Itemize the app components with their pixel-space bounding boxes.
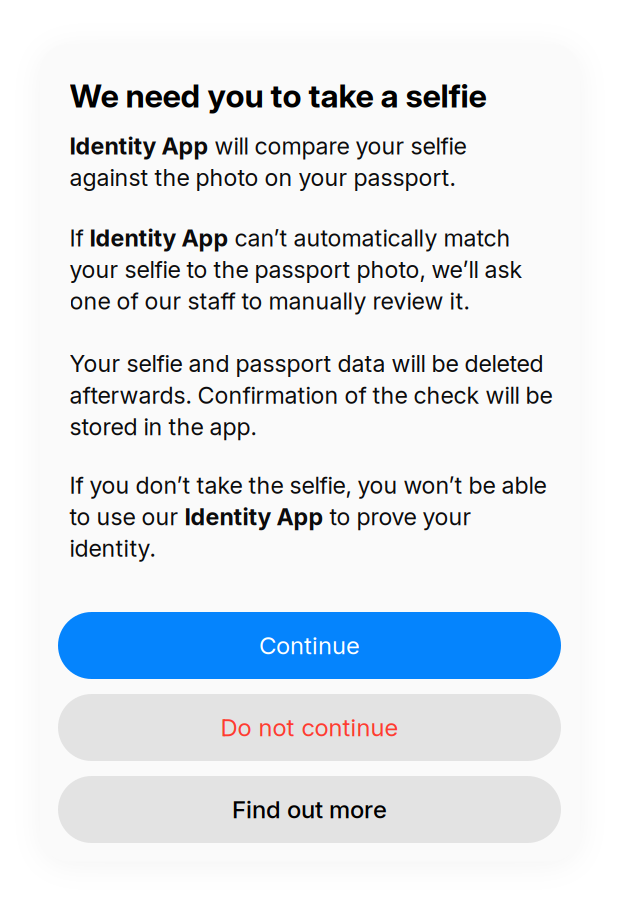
staticText: If you don’t take the selfie, you won’t … — [69, 471, 546, 562]
staticText: Do not continue — [220, 713, 398, 742]
button[interactable]: Continue — [58, 612, 561, 679]
staticText: Identity App will compare your selfie ag… — [69, 132, 466, 191]
staticText: Your selfie and passport data will be de… — [69, 350, 552, 440]
button[interactable]: Find out more — [58, 776, 561, 843]
staticText: Continue — [259, 631, 360, 660]
staticText: Find out more — [232, 795, 387, 824]
button[interactable]: Do not continue — [58, 694, 561, 761]
staticText: If Identity App can’t automatically matc… — [69, 224, 522, 315]
staticText: We need you to take a selfie — [69, 76, 486, 115]
